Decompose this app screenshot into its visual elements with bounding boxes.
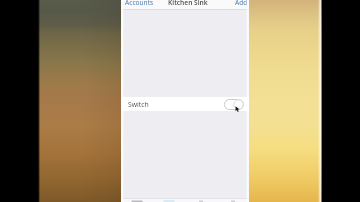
- staticText: Add: [235, 0, 248, 7]
- button[interactable]: Switch: [121, 97, 249, 111]
- button[interactable]: Accounts: [121, 0, 154, 9]
- button[interactable]: Add: [235, 0, 249, 9]
- button[interactable]: Favourites: [153, 199, 185, 202]
- staticText: Kitchen Sink: [168, 0, 208, 7]
- button[interactable]: Contacts: [185, 199, 217, 202]
- button[interactable]: Switch toggle: [224, 99, 244, 110]
- staticText: Accounts: [125, 0, 154, 7]
- button[interactable]: More: [217, 199, 249, 202]
- button[interactable]: Recents: [121, 199, 153, 202]
- staticText: Switch: [128, 100, 149, 109]
